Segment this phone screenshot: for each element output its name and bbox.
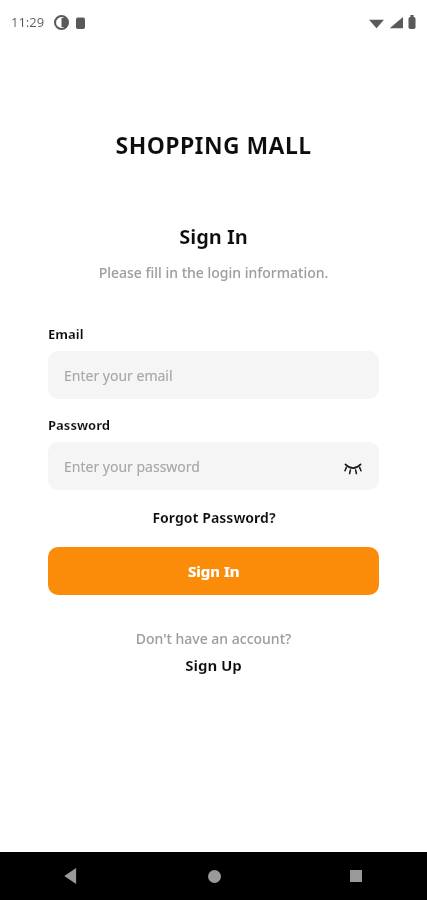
- button[interactable]: Enter your password: [48, 442, 379, 490]
- button[interactable]: Enter your email: [48, 351, 379, 399]
- staticText: Don't have an account?: [48, 629, 379, 648]
- button[interactable]: Forgot Password?: [48, 506, 379, 529]
- button[interactable]: Sign Up: [48, 655, 379, 675]
- staticText: Please fill in the login information.: [0, 263, 427, 282]
- staticText: 11:29: [11, 13, 45, 31]
- staticText: Sign Up: [185, 655, 242, 675]
- staticText: Enter your password: [64, 457, 341, 476]
- staticText: Sign In: [0, 223, 427, 250]
- button[interactable]: Show password: [341, 454, 365, 478]
- button[interactable]: Recent apps: [332, 852, 380, 900]
- staticText: Enter your email: [64, 366, 365, 385]
- button[interactable]: Back: [47, 852, 95, 900]
- staticText: SHOPPING MALL: [0, 129, 427, 160]
- button[interactable]: Sign In: [48, 547, 379, 595]
- staticText: Email: [48, 325, 84, 343]
- staticText: Sign In: [188, 561, 240, 581]
- staticText: Password: [48, 416, 110, 434]
- button[interactable]: Home: [190, 852, 238, 900]
- staticText: Forgot Password?: [152, 508, 276, 527]
